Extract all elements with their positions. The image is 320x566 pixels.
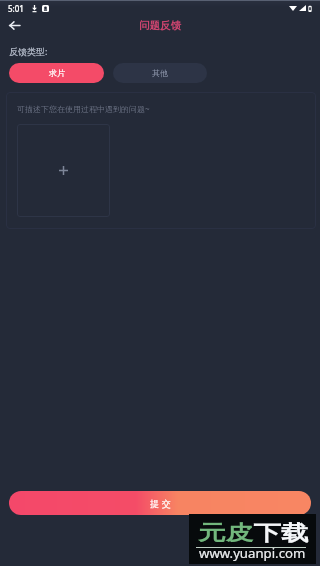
button[interactable]: 提交 bbox=[9, 491, 311, 515]
staticText: 反馈类型: bbox=[9, 45, 48, 57]
staticText: 问题反馈 bbox=[139, 19, 181, 32]
button[interactable]: 求片 bbox=[9, 63, 104, 83]
staticText: 元皮 bbox=[198, 520, 253, 547]
staticText: 可描述下您在使用过程中遇到的问题~ bbox=[17, 103, 150, 114]
staticText: 提交 bbox=[149, 498, 172, 509]
button[interactable]: 其他 bbox=[113, 63, 207, 83]
staticText: 5:01 bbox=[8, 3, 24, 14]
staticText: www.yuanpi.com bbox=[199, 545, 306, 561]
staticText: 下载 bbox=[253, 520, 309, 547]
button[interactable]: Back bbox=[4, 15, 24, 35]
staticText: 求片 bbox=[49, 68, 65, 78]
staticText: 其他 bbox=[152, 68, 168, 78]
button[interactable]: Add image bbox=[17, 124, 110, 217]
